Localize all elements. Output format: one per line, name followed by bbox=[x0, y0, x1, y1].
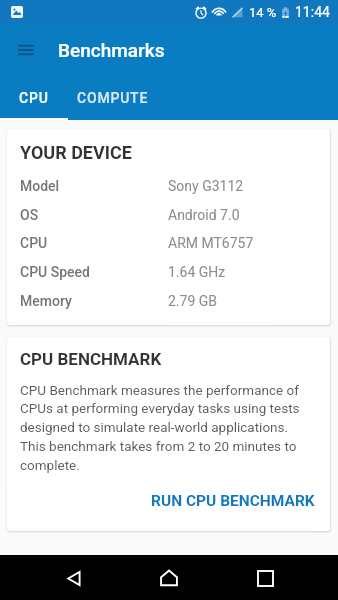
staticText: YOUR DEVICE bbox=[20, 142, 132, 163]
staticText: 11:44 bbox=[295, 4, 330, 20]
button[interactable]: COMPUTE bbox=[68, 76, 157, 120]
button[interactable]: Model bbox=[20, 178, 317, 194]
button[interactable]: Back bbox=[52, 556, 96, 600]
staticText: CPU bbox=[20, 235, 168, 251]
staticText: 2.79 GB bbox=[168, 293, 218, 309]
staticText: CPU bbox=[19, 90, 49, 106]
staticText: Sony G3112 bbox=[168, 178, 244, 194]
button[interactable]: Open navigation drawer bbox=[9, 33, 43, 67]
staticText: RUN CPU BENCHMARK bbox=[151, 492, 315, 510]
staticText: CPU BENCHMARK bbox=[20, 349, 162, 369]
button[interactable]: Home bbox=[147, 556, 191, 600]
staticText: 14 % bbox=[249, 5, 277, 20]
staticText: OS bbox=[20, 207, 168, 223]
button[interactable]: CPU bbox=[20, 235, 317, 251]
staticText: CPU Speed bbox=[20, 264, 168, 280]
button[interactable]: CPU bbox=[0, 76, 68, 120]
staticText: CPU Benchmark measures the performance o… bbox=[20, 382, 311, 473]
button[interactable]: CPU Speed bbox=[20, 264, 317, 280]
staticText: 1.64 GHz bbox=[168, 264, 226, 280]
staticText: Android 7.0 bbox=[168, 207, 240, 223]
staticText: Model bbox=[20, 178, 168, 194]
staticText: COMPUTE bbox=[77, 90, 149, 106]
staticText: ARM MT6757 bbox=[168, 235, 254, 251]
staticText: Memory bbox=[20, 293, 168, 309]
button[interactable]: OS bbox=[20, 207, 317, 223]
staticText: Benchmarks bbox=[58, 39, 165, 61]
button[interactable]: Recent apps bbox=[243, 556, 287, 600]
button[interactable]: Memory bbox=[20, 293, 317, 309]
button[interactable]: RUN CPU BENCHMARK bbox=[146, 487, 320, 515]
